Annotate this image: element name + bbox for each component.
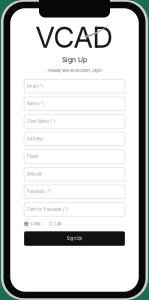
button[interactable]: Clinic bbox=[24, 221, 41, 226]
button[interactable]: Clinic Name (*) bbox=[24, 114, 125, 128]
staticText: Email (*) bbox=[27, 84, 44, 89]
button[interactable]: Name (*) bbox=[24, 97, 125, 111]
staticText: Confirm Password (*) bbox=[27, 207, 69, 212]
staticText: Log In bbox=[92, 68, 102, 73]
staticText: Address bbox=[27, 136, 43, 141]
staticText: Sign Up bbox=[62, 56, 87, 64]
staticText: Sign Up bbox=[66, 236, 82, 241]
button[interactable]: Address bbox=[24, 132, 125, 146]
staticText: Website bbox=[27, 172, 42, 177]
staticText: VCAD bbox=[35, 20, 112, 55]
staticText: Name (*) bbox=[27, 101, 45, 106]
staticText: Lab bbox=[55, 221, 61, 226]
button[interactable]: Website bbox=[24, 167, 125, 181]
staticText: Clinic bbox=[31, 221, 41, 226]
button[interactable]: Email (*) bbox=[24, 79, 125, 93]
staticText: Already have an account? bbox=[47, 68, 90, 73]
staticText: Phone bbox=[27, 154, 38, 159]
button[interactable]: Confirm Password (*) bbox=[24, 202, 125, 216]
button[interactable]: Phone bbox=[24, 150, 125, 163]
staticText: Password (*) bbox=[27, 189, 52, 194]
button[interactable]: Lab bbox=[49, 221, 61, 226]
staticText: Clinic Name (*) bbox=[27, 119, 56, 124]
button[interactable]: Log In bbox=[92, 68, 102, 73]
button[interactable]: Sign Up bbox=[24, 231, 125, 246]
button[interactable]: Password (*) bbox=[24, 185, 125, 199]
